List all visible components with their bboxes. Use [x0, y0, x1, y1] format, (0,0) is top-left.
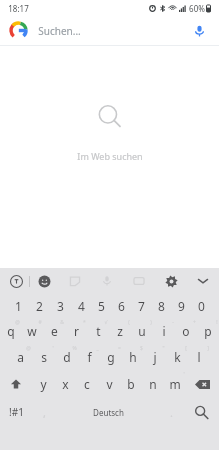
button[interactable]: p	[197, 318, 219, 344]
staticText: Suchen...	[38, 24, 81, 38]
button[interactable]: Search	[183, 398, 219, 426]
button[interactable]: k	[166, 344, 188, 370]
staticText: &	[60, 319, 64, 326]
staticText: 2	[36, 298, 43, 314]
button[interactable]: h	[122, 344, 144, 370]
button[interactable]: v	[98, 370, 120, 398]
staticText: s	[41, 349, 47, 365]
button[interactable]: Settings	[161, 271, 181, 291]
staticText: "	[162, 345, 165, 352]
staticText: 6	[118, 298, 125, 314]
staticText: 4	[78, 298, 85, 314]
button[interactable]: Hide keyboard	[193, 271, 213, 291]
staticText: 7	[138, 298, 145, 314]
staticText: %	[72, 345, 77, 352]
staticText: k	[174, 349, 181, 365]
button[interactable]: u	[131, 318, 153, 344]
staticText: 1	[15, 298, 22, 314]
staticText: .	[170, 405, 173, 420]
staticText: f	[87, 349, 92, 365]
button[interactable]: Voice search	[189, 21, 209, 41]
button[interactable]: n	[142, 370, 164, 398]
button[interactable]: b	[120, 370, 142, 398]
button[interactable]: 7	[131, 294, 151, 318]
button[interactable]: 9	[171, 294, 191, 318]
button[interactable]: Deutsch	[56, 398, 160, 426]
button[interactable]: 1	[8, 294, 29, 318]
button[interactable]: o	[175, 318, 197, 344]
staticText: r	[74, 323, 79, 339]
staticText: =	[118, 345, 121, 352]
button[interactable]: m	[164, 370, 186, 398]
button[interactable]: w	[21, 318, 43, 344]
staticText: m	[169, 376, 181, 392]
button[interactable]: z	[109, 318, 131, 344]
staticText: b	[127, 376, 135, 392]
button[interactable]: x	[54, 370, 76, 398]
staticText: q	[7, 323, 15, 339]
staticText: p	[204, 323, 212, 339]
button[interactable]: Voice input	[97, 271, 117, 291]
button[interactable]: e	[43, 318, 65, 344]
staticText: n	[149, 376, 157, 392]
button[interactable]: 6	[111, 294, 131, 318]
button[interactable]: j	[144, 344, 166, 370]
staticText: h	[129, 349, 137, 365]
staticText: o	[182, 323, 190, 339]
button[interactable]: Suchen...	[0, 16, 219, 45]
button[interactable]: Emoji	[34, 271, 54, 291]
staticText: 60%	[189, 3, 205, 14]
staticText: x	[62, 376, 69, 392]
staticText: @	[26, 345, 31, 352]
staticText: Deutsch	[93, 407, 124, 418]
button[interactable]: y	[32, 370, 54, 398]
staticText: ]	[207, 345, 209, 352]
staticText: d	[63, 349, 71, 365]
staticText: (	[128, 319, 130, 326]
staticText: √	[104, 319, 108, 325]
button[interactable]: a	[9, 344, 32, 370]
button[interactable]: 5	[91, 294, 111, 318]
button[interactable]: 4	[71, 294, 91, 318]
button[interactable]: d	[55, 344, 78, 370]
staticText: [	[185, 345, 187, 352]
staticText: Im Web suchen	[77, 150, 143, 162]
button[interactable]: Backspace	[186, 370, 219, 398]
button[interactable]: l	[188, 344, 210, 370]
staticText: 18:17	[8, 3, 29, 14]
staticText: e	[51, 323, 58, 339]
button[interactable]: 3	[50, 294, 71, 318]
button[interactable]: c	[76, 370, 98, 398]
staticText: 5	[98, 298, 105, 314]
button[interactable]: r	[65, 318, 87, 344]
button[interactable]: f	[78, 344, 100, 370]
staticText: !#1	[9, 405, 24, 419]
button[interactable]: i	[153, 318, 175, 344]
button[interactable]: Translate	[6, 271, 26, 291]
button[interactable]: t	[87, 318, 109, 344]
staticText: j	[153, 349, 157, 365]
button[interactable]: Stickers	[65, 271, 85, 291]
button[interactable]: 2	[29, 294, 50, 318]
staticText: i	[162, 323, 166, 339]
staticText: t	[96, 323, 101, 339]
staticText: ,	[43, 405, 46, 420]
button[interactable]: GIF	[129, 271, 149, 291]
button[interactable]: q	[0, 318, 21, 344]
button[interactable]: g	[100, 344, 122, 370]
button[interactable]: 0	[191, 294, 211, 318]
staticText: z	[117, 323, 123, 339]
staticText: 0	[198, 298, 205, 314]
staticText: $	[140, 345, 143, 352]
staticText: 3	[57, 298, 64, 314]
button[interactable]: Shift	[0, 370, 32, 398]
staticText: l	[197, 349, 201, 365]
staticText: 9	[178, 298, 185, 314]
button[interactable]: s	[32, 344, 55, 370]
button[interactable]: !#1	[0, 398, 33, 426]
button[interactable]: 8	[151, 294, 171, 318]
